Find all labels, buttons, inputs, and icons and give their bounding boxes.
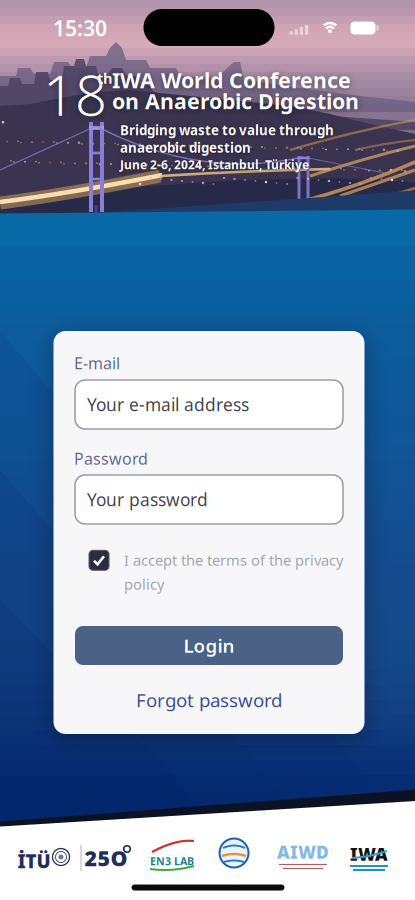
staticText: IWA [350,842,388,865]
staticText: 25O [84,844,127,872]
staticText: EN3 LAB [150,854,194,868]
staticText: AIWD [277,840,329,863]
staticText: Password [74,448,148,469]
staticText: on Anaerobic Digestion [112,87,359,115]
button[interactable]: Login [75,626,343,665]
button[interactable]: Your e-mail address [75,380,343,429]
staticText: I accept the terms of the privacy [124,550,343,570]
staticText: 15:30 [53,14,107,42]
button[interactable]: Forgot password [136,688,282,712]
staticText: Your password [87,488,208,511]
staticText: June 2-6, 2024, Istanbul, Türkiye [120,156,309,172]
button[interactable]: Your password [75,475,343,524]
staticText: policy [124,574,164,594]
staticText: İTÜ [17,849,50,873]
staticText: anaerobic digestion [120,139,251,156]
staticText: 18 [43,57,107,131]
staticText: IWA World Conference [112,66,351,94]
staticText: Your e-mail address [87,393,249,416]
staticText: Forgot password [136,688,282,712]
button[interactable]: I accept the terms of the privacy [89,550,389,594]
staticText: E-mail [74,352,120,374]
staticText: th [97,68,113,88]
staticText: Login [183,633,234,658]
staticText: Bridging waste to value through [120,121,334,139]
